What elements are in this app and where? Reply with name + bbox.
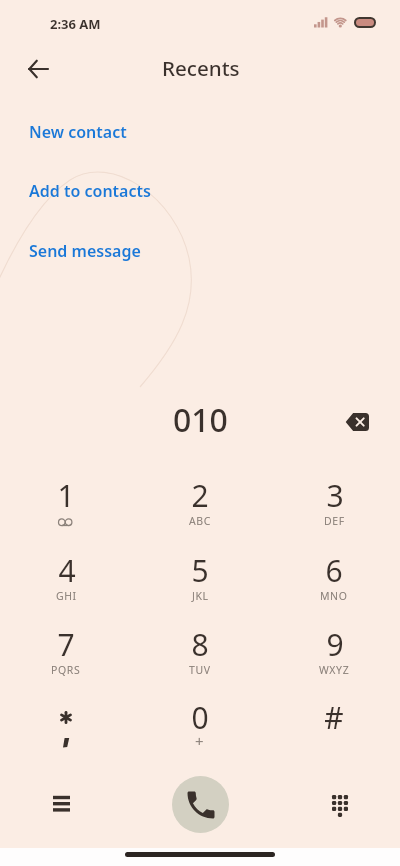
staticText: Send message bbox=[29, 240, 141, 262]
staticText: WXYZ bbox=[319, 663, 350, 677]
staticText: TUV bbox=[189, 663, 211, 677]
staticText: 8 bbox=[191, 624, 209, 665]
staticText: + bbox=[195, 731, 205, 751]
staticText: 4 bbox=[58, 550, 76, 591]
button[interactable]: 3 bbox=[286, 475, 382, 547]
button[interactable]: # bbox=[286, 697, 382, 769]
staticText: MNO bbox=[320, 589, 348, 603]
button[interactable]: 1 bbox=[18, 475, 114, 547]
staticText: ABC bbox=[189, 514, 211, 528]
staticText: PQRS bbox=[51, 663, 81, 677]
button[interactable]: Send message bbox=[16, 239, 226, 263]
staticText: 1 bbox=[57, 475, 75, 516]
button[interactable]: 4 bbox=[18, 550, 114, 622]
button[interactable]: 6 bbox=[286, 550, 382, 622]
staticText: 5 bbox=[191, 550, 209, 591]
button[interactable]: Menu bbox=[39, 780, 83, 824]
button[interactable]: Add to contacts bbox=[16, 179, 226, 203]
staticText: 9 bbox=[326, 624, 344, 665]
staticText: 2 bbox=[191, 475, 209, 516]
staticText: JKL bbox=[192, 589, 209, 603]
button[interactable]: New contact bbox=[16, 120, 226, 144]
button[interactable]: 8 bbox=[152, 624, 248, 696]
staticText: 0 bbox=[191, 697, 209, 738]
staticText: Add to contacts bbox=[29, 180, 151, 202]
button[interactable]: Backspace bbox=[335, 400, 379, 444]
button[interactable]: 0 bbox=[152, 697, 248, 769]
button[interactable]: Dialpad bbox=[318, 782, 362, 826]
staticText: # bbox=[324, 697, 344, 738]
button[interactable]: 5 bbox=[152, 550, 248, 622]
staticText: 7 bbox=[57, 624, 75, 665]
staticText: Recents bbox=[162, 54, 240, 82]
staticText: 6 bbox=[325, 550, 343, 591]
button[interactable]: Back bbox=[16, 47, 60, 91]
button[interactable] bbox=[18, 697, 114, 769]
staticText: 010 bbox=[173, 398, 228, 442]
button[interactable]: 2 bbox=[152, 475, 248, 547]
button[interactable]: 9 bbox=[286, 624, 382, 696]
staticText: DEF bbox=[324, 514, 345, 528]
staticText: 3 bbox=[326, 475, 344, 516]
button[interactable]: 7 bbox=[18, 624, 114, 696]
staticText: New contact bbox=[29, 121, 127, 143]
staticText: GHI bbox=[56, 589, 77, 603]
button[interactable]: Call bbox=[172, 776, 229, 833]
staticText: 2:36 AM bbox=[50, 15, 101, 33]
